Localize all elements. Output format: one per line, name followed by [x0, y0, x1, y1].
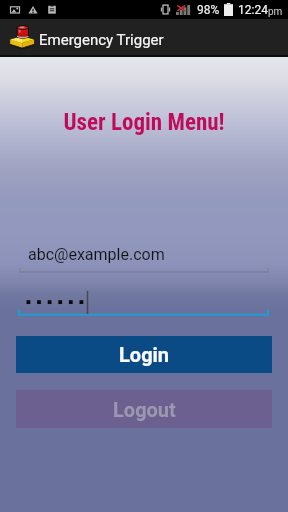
staticText: Login — [119, 343, 170, 366]
staticText: 12:24 — [238, 3, 268, 17]
staticText: 98% — [197, 3, 220, 17]
staticText: pm — [268, 6, 283, 18]
other: Emergency trigger — [8, 22, 37, 52]
staticText: abc@example.com — [28, 245, 165, 264]
button[interactable]: Login — [16, 336, 272, 373]
button[interactable]: Password — [18, 288, 269, 316]
staticText: Logout — [113, 398, 176, 421]
button[interactable]: Emergency trigger — [0, 19, 288, 57]
staticText: User Login Menu! — [0, 109, 288, 136]
button[interactable]: abc@example.com — [19, 245, 269, 273]
button[interactable]: Logout — [16, 390, 272, 428]
staticText: Emergency Trigger — [39, 31, 164, 49]
